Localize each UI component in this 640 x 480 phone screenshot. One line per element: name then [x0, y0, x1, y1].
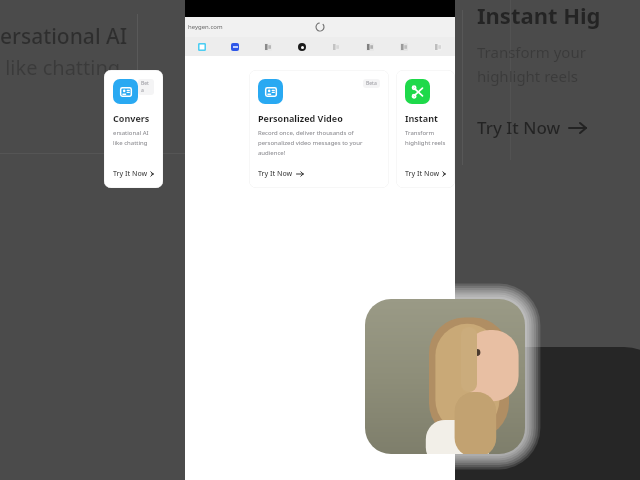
staticText: Instant High [405, 112, 446, 124]
button[interactable]: Tab 8 [421, 37, 455, 56]
button[interactable]: Tab 3 [251, 37, 285, 56]
staticText: Beta [141, 80, 151, 94]
staticText: Record once, deliver thousands of [258, 129, 354, 137]
button[interactable]: Tab 7 [387, 37, 421, 56]
staticText: Instant Hig [477, 0, 601, 30]
button[interactable]: Beta [249, 70, 389, 188]
button[interactable]: Reload [313, 20, 327, 34]
staticText: ersational AI [0, 22, 128, 51]
staticText: Try It Now [258, 169, 293, 179]
button[interactable]: Tab 5 [319, 37, 353, 56]
staticText: highlight reels [477, 66, 579, 86]
staticText: like chatting [0, 54, 121, 81]
staticText: audience! [258, 149, 286, 157]
button[interactable]: Try It Now [405, 169, 446, 179]
button[interactable]: Beta [104, 70, 163, 188]
staticText: Conversational AI [113, 112, 154, 124]
staticText: highlight reels — [405, 139, 446, 147]
button[interactable]: Tab 6 [353, 37, 387, 56]
staticText: Transform your [477, 42, 586, 62]
staticText: ersational AI [113, 129, 149, 137]
staticText: Try It Now [405, 169, 440, 179]
staticText: Transform your l [405, 129, 446, 137]
staticText: like chatting [113, 139, 148, 147]
staticText: Personalized Video [258, 112, 343, 124]
button[interactable]: Tab 4 [285, 37, 319, 56]
staticText: heygen.com [188, 23, 223, 31]
button[interactable]: Try It Now [477, 116, 588, 139]
staticText: personalized video messages to your [258, 139, 363, 147]
staticText: Try It Now [113, 169, 148, 179]
staticText: Try It Now [477, 116, 561, 139]
button[interactable]: Tab 2 [218, 37, 251, 56]
button[interactable]: Try It Now [258, 169, 304, 179]
button[interactable]: Tab 1 [185, 37, 218, 56]
button[interactable]: Instant High [396, 70, 455, 188]
button[interactable]: Try It Now [113, 169, 154, 179]
staticText: Beta [366, 80, 377, 87]
